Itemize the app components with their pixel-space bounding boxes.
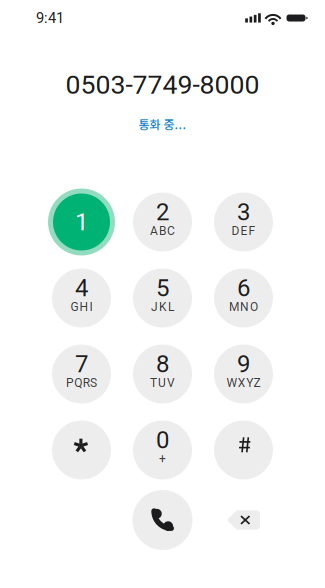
staticText: 9 [237, 350, 250, 378]
staticText: C [167, 224, 175, 238]
staticText: A [150, 224, 158, 238]
staticText: G [70, 300, 78, 314]
staticText: T [150, 376, 157, 390]
button[interactable]: 2 [122, 184, 203, 260]
staticText: 통화 중... [138, 115, 186, 133]
button[interactable]: Delete [203, 488, 284, 552]
staticText: P [66, 376, 74, 390]
staticText: I [89, 300, 92, 314]
staticText: F [248, 224, 255, 238]
staticText: X [238, 376, 246, 390]
staticText: K [159, 300, 167, 314]
staticText: 3 [237, 198, 250, 226]
staticText: + [159, 452, 166, 466]
staticText: 6 [237, 274, 250, 302]
staticText: V [167, 376, 175, 390]
staticText: 1 [75, 208, 88, 236]
staticText: M [229, 300, 239, 314]
button[interactable]: 5 [122, 260, 203, 336]
staticText: 5 [156, 274, 169, 302]
staticText: 7 [75, 350, 88, 378]
staticText: 0 [156, 426, 169, 454]
button[interactable]: Pound [203, 412, 284, 488]
button[interactable]: 8 [122, 336, 203, 412]
staticText: Z [253, 376, 260, 390]
button[interactable]: 4 [41, 260, 122, 336]
button[interactable]: Call [122, 488, 203, 552]
staticText: D [231, 224, 239, 238]
staticText: H [79, 300, 88, 314]
staticText: 2 [156, 198, 169, 226]
staticText: R [83, 376, 90, 390]
staticText: 8 [156, 350, 169, 378]
staticText: N [240, 300, 249, 314]
button[interactable]: 7 [41, 336, 122, 412]
button[interactable]: 0 [122, 412, 203, 488]
staticText: B [159, 224, 166, 238]
staticText: S [90, 376, 97, 390]
button[interactable]: 3 [203, 184, 284, 260]
staticText: Q [74, 376, 82, 390]
staticText: E [240, 224, 247, 238]
staticText: U [158, 376, 166, 390]
staticText: 0503-7749-8000 [65, 69, 259, 100]
button[interactable]: Star [41, 412, 122, 488]
button[interactable]: 6 [203, 260, 284, 336]
staticText: L [168, 300, 174, 314]
staticText: O [250, 300, 258, 314]
staticText: J [151, 300, 158, 314]
button[interactable]: 1 [41, 184, 122, 260]
staticText: 4 [75, 274, 88, 302]
button[interactable]: 9 [203, 336, 284, 412]
staticText: 9:41 [36, 9, 64, 27]
staticText: W [227, 376, 238, 390]
staticText: Y [246, 376, 253, 390]
